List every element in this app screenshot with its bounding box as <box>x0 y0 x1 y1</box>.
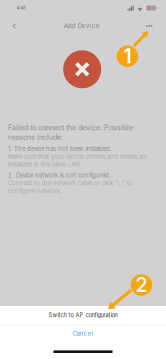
button[interactable]: Cancel <box>0 325 166 342</box>
staticText: 2. Device network is not configured. <box>8 171 111 179</box>
staticText: Failed to connect the device. Possible r… <box>8 123 133 142</box>
staticText: 1 <box>123 44 131 68</box>
button[interactable]: More options <box>138 16 160 36</box>
staticText: 2 <box>135 273 147 297</box>
staticText: Connect to the network cable or click “.… <box>8 179 133 195</box>
staticText: 1. The device has not been initialized. <box>8 145 112 153</box>
staticText: 4:41 <box>17 5 26 11</box>
staticText: Cancel <box>72 330 93 337</box>
staticText: Add Device <box>64 22 100 30</box>
staticText: Make sure that your mobile phone and dev… <box>8 153 147 168</box>
button[interactable]: Switch to AP configuration <box>0 306 166 324</box>
button[interactable]: Back <box>3 16 25 36</box>
staticText: Switch to AP configuration <box>48 312 117 319</box>
